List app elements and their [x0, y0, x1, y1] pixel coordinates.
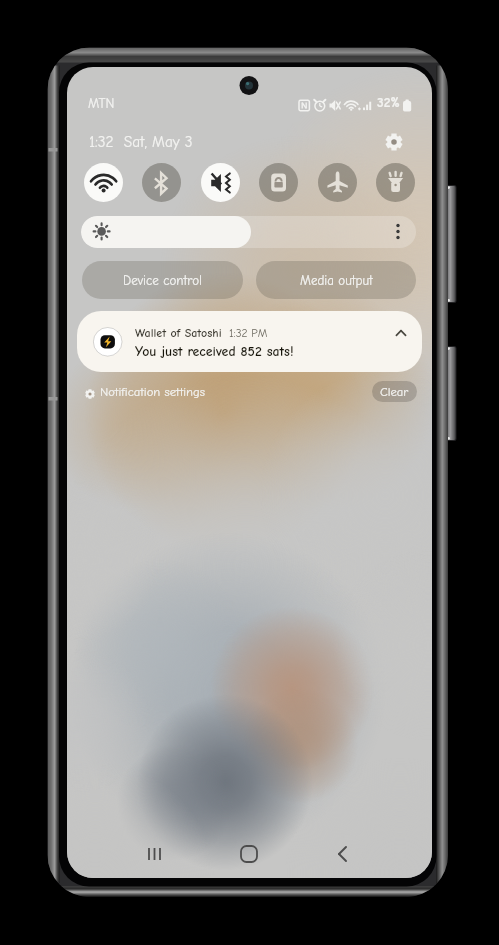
staticText: MTN	[88, 96, 115, 112]
staticText: 1:32 PM	[229, 327, 268, 340]
button[interactable]: Brightness options	[386, 216, 410, 248]
button[interactable]: Recent apps	[137, 842, 173, 866]
button[interactable]: Wi-Fi	[84, 163, 123, 202]
button[interactable]: Lock network	[259, 163, 298, 202]
button[interactable]: Bluetooth	[142, 163, 181, 202]
button[interactable]: Sound	[201, 163, 240, 202]
staticText: 32%	[377, 95, 400, 111]
button[interactable]: Collapse notification	[389, 321, 413, 345]
button[interactable]: Media output	[256, 261, 416, 299]
button[interactable]: Back	[325, 842, 361, 866]
button[interactable]: Flight mode	[318, 163, 357, 202]
button[interactable]: Device control	[82, 261, 243, 299]
button[interactable]: Wallet of Satoshi	[77, 311, 422, 372]
staticText: You just received 852 sats!	[135, 344, 294, 360]
staticText: Media output	[300, 273, 373, 288]
staticText: Clear	[380, 385, 409, 399]
button[interactable]: Home	[231, 842, 267, 866]
button[interactable]: Notification settings	[82, 380, 205, 402]
staticText: 1:32 Sat, May 3	[89, 133, 193, 151]
button[interactable]: Brightness	[81, 216, 416, 248]
staticText: Wallet of Satoshi	[135, 326, 222, 340]
button[interactable]: Settings	[380, 128, 408, 156]
staticText: Notification settings	[100, 385, 205, 399]
staticText: Device control	[123, 273, 202, 288]
button[interactable]: Flashlight	[376, 163, 415, 202]
button[interactable]: Clear	[372, 381, 417, 402]
